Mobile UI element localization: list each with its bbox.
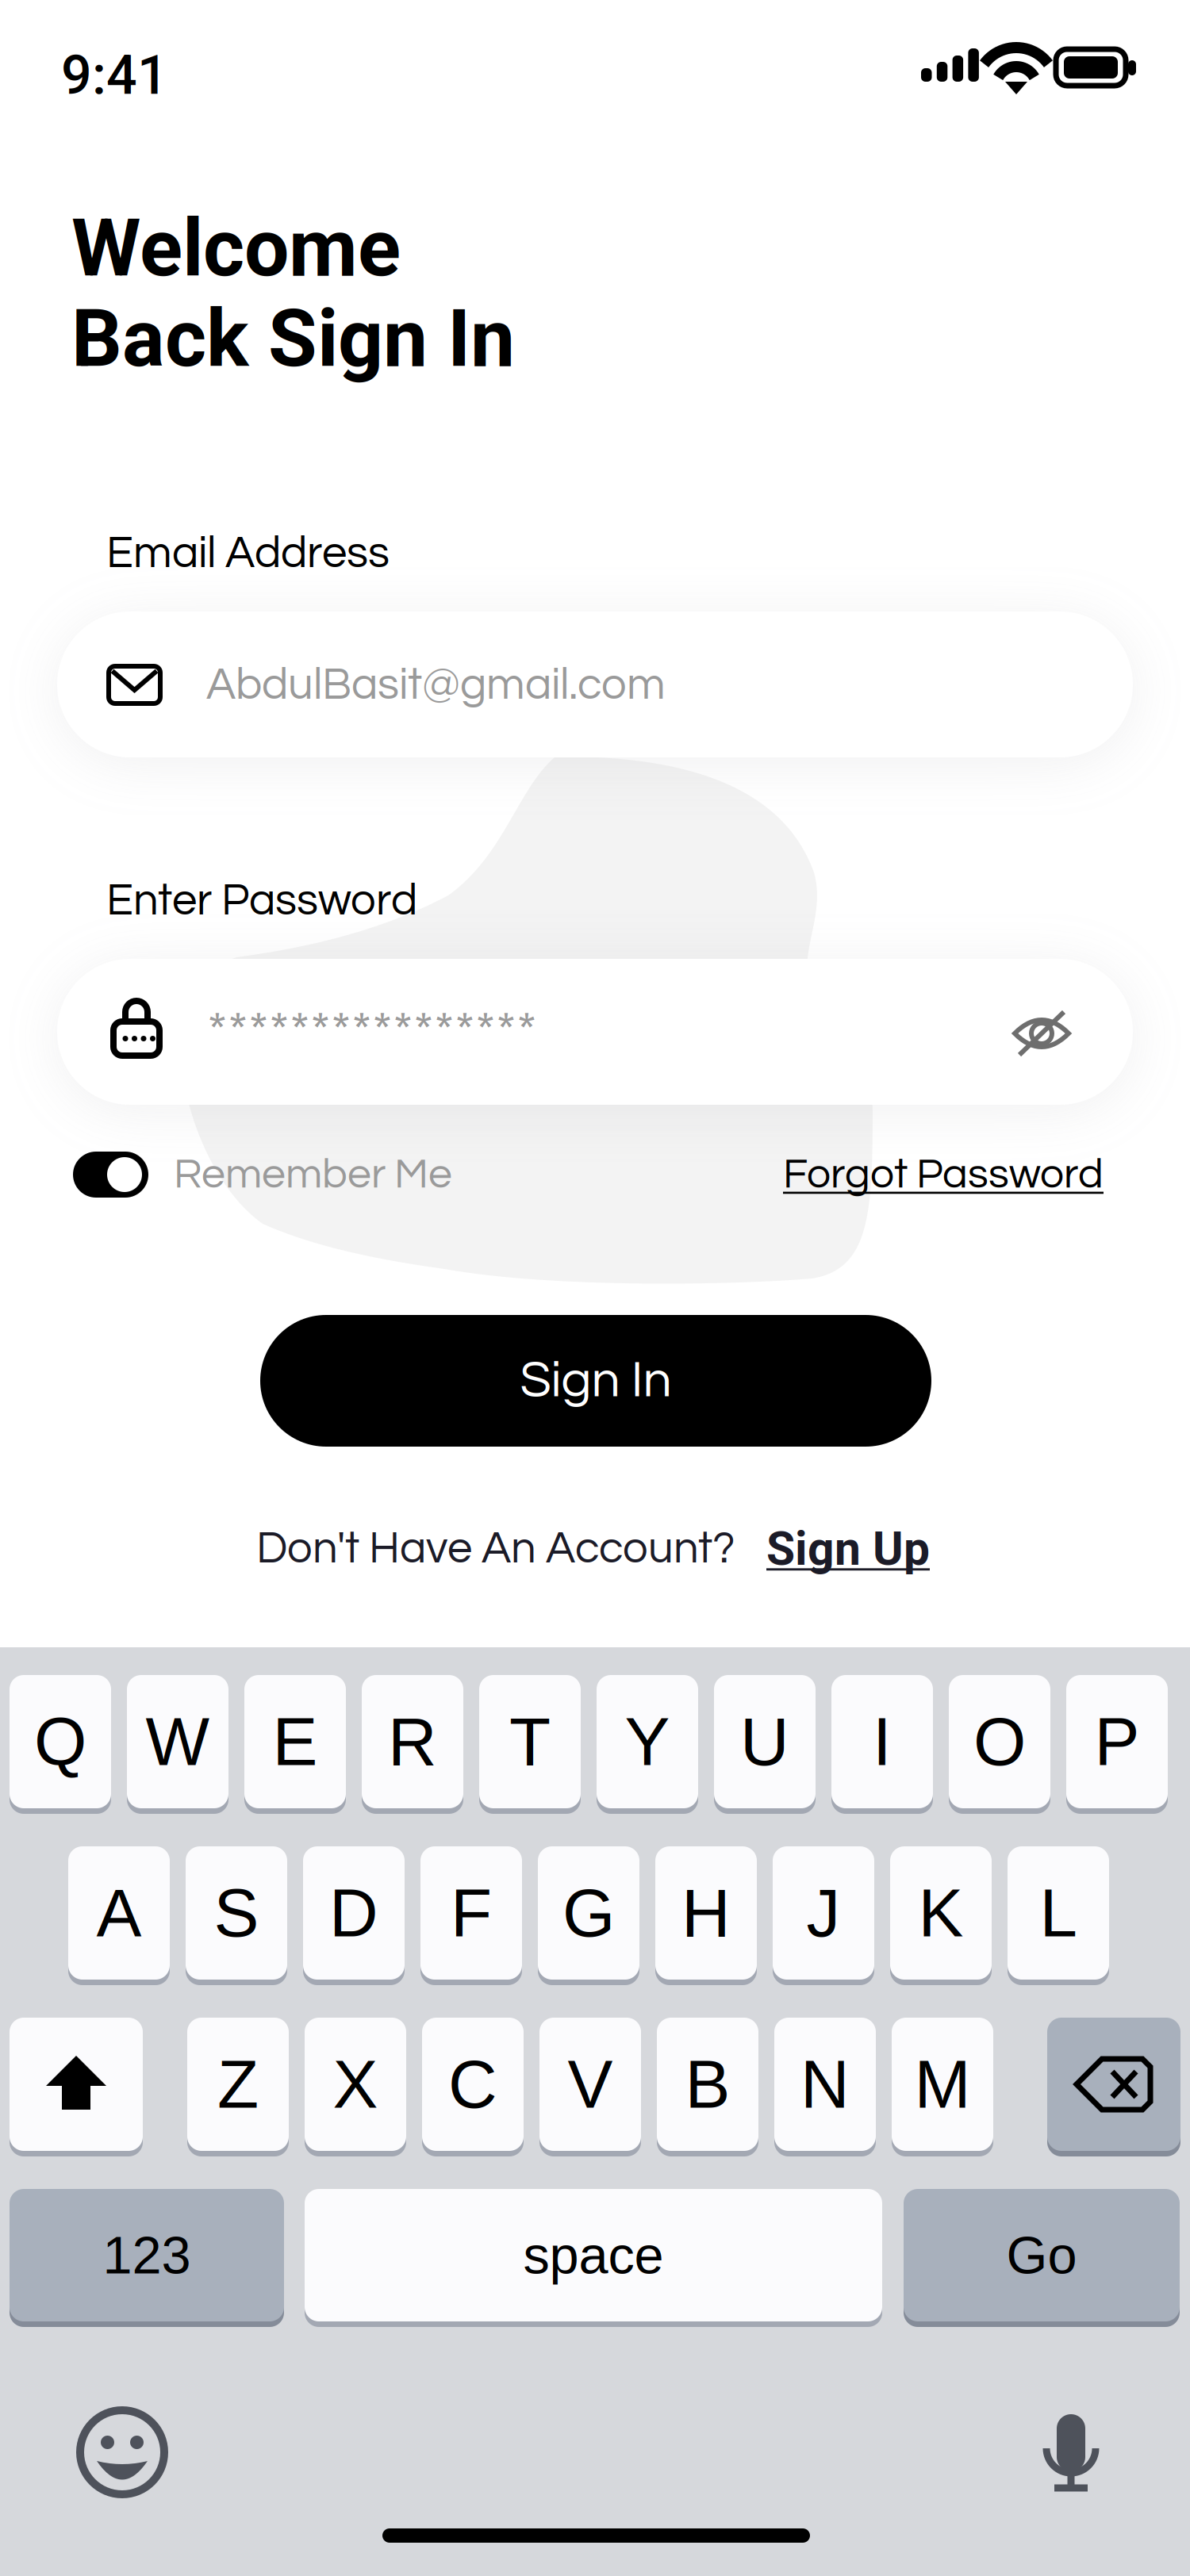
staticText: Z — [217, 2046, 259, 2122]
button[interactable]: C — [0, 0, 1190, 2576]
staticText: Y — [625, 1704, 670, 1779]
staticText: O — [973, 1704, 1026, 1779]
staticText: N — [800, 2046, 850, 2122]
staticText: Sign In — [520, 1355, 672, 1407]
staticText: B — [685, 2046, 730, 2122]
staticText: E — [273, 1704, 318, 1779]
staticText: Don't Have An Account? — [256, 1526, 735, 1572]
staticText: V — [568, 2046, 613, 2122]
staticText: AbdulBasit@gmail.com — [206, 662, 666, 708]
staticText: T — [509, 1704, 551, 1779]
staticText: Go — [1006, 2226, 1077, 2285]
button[interactable]: Sign In — [0, 0, 1190, 2576]
staticText: C — [448, 2046, 497, 2122]
staticText: H — [681, 1875, 731, 1951]
button[interactable]: M — [0, 0, 1190, 2576]
button[interactable]: N — [0, 0, 1190, 2576]
button[interactable]: space — [0, 0, 1190, 2576]
button[interactable]: T — [0, 0, 1190, 2576]
button[interactable]: Go — [0, 0, 1190, 2576]
button[interactable]: I — [0, 0, 1190, 2576]
button[interactable]: Remember Me — [0, 0, 1190, 2576]
button[interactable]: U — [0, 0, 1190, 2576]
staticText: A — [96, 1875, 142, 1951]
staticText: P — [1094, 1704, 1140, 1779]
button[interactable]: S — [0, 0, 1190, 2576]
staticText: K — [918, 1875, 964, 1951]
staticText: F — [451, 1875, 492, 1951]
button[interactable]: Q — [0, 0, 1190, 2576]
button[interactable]: Z — [0, 0, 1190, 2576]
button[interactable]: X — [0, 0, 1190, 2576]
staticText: Email Address — [106, 531, 390, 577]
staticText: W — [146, 1704, 210, 1779]
button[interactable]: Emoji — [0, 0, 1190, 2576]
staticText: Sign Up — [766, 1522, 930, 1576]
button[interactable]: Shift — [0, 0, 1190, 2576]
staticText: Back Sign In — [71, 292, 515, 385]
staticText: Remember Me — [174, 1153, 452, 1196]
staticText: R — [388, 1704, 437, 1779]
button[interactable]: V — [0, 0, 1190, 2576]
button[interactable]: D — [0, 0, 1190, 2576]
staticText: L — [1040, 1875, 1077, 1951]
button[interactable]: R — [0, 0, 1190, 2576]
button[interactable]: A — [0, 0, 1190, 2576]
staticText: D — [329, 1875, 378, 1951]
staticText: X — [333, 2046, 378, 2122]
button[interactable]: G — [0, 0, 1190, 2576]
staticText: Q — [34, 1704, 86, 1779]
button[interactable]: O — [0, 0, 1190, 2576]
staticText: U — [740, 1704, 789, 1779]
button[interactable]: J — [0, 0, 1190, 2576]
button[interactable]: B — [0, 0, 1190, 2576]
button[interactable]: Sign Up — [0, 0, 1190, 2576]
button[interactable]: Forgot Password — [0, 0, 1190, 2576]
staticText: space — [523, 2226, 664, 2285]
staticText: 123 — [103, 2226, 191, 2285]
button[interactable]: W — [0, 0, 1190, 2576]
staticText: M — [914, 2046, 971, 2122]
button[interactable]: F — [0, 0, 1190, 2576]
button[interactable]: E — [0, 0, 1190, 2576]
button[interactable]: L — [0, 0, 1190, 2576]
staticText: G — [562, 1875, 615, 1951]
staticText: J — [806, 1875, 841, 1951]
button[interactable]: P — [0, 0, 1190, 2576]
button[interactable]: Dictation — [0, 0, 1190, 2576]
button[interactable]: Show password — [0, 0, 1190, 2576]
button[interactable]: Delete — [0, 0, 1190, 2576]
staticText: Enter Password — [106, 878, 417, 924]
staticText: Welcome — [71, 202, 401, 295]
staticText: S — [214, 1875, 259, 1951]
staticText: 9:41 — [61, 44, 168, 107]
staticText: I — [873, 1704, 892, 1779]
staticText: Forgot Password — [783, 1153, 1104, 1196]
button[interactable]: Y — [0, 0, 1190, 2576]
button[interactable]: 123 — [0, 0, 1190, 2576]
button[interactable]: H — [0, 0, 1190, 2576]
button[interactable]: K — [0, 0, 1190, 2576]
staticText: **************** — [207, 1004, 537, 1061]
